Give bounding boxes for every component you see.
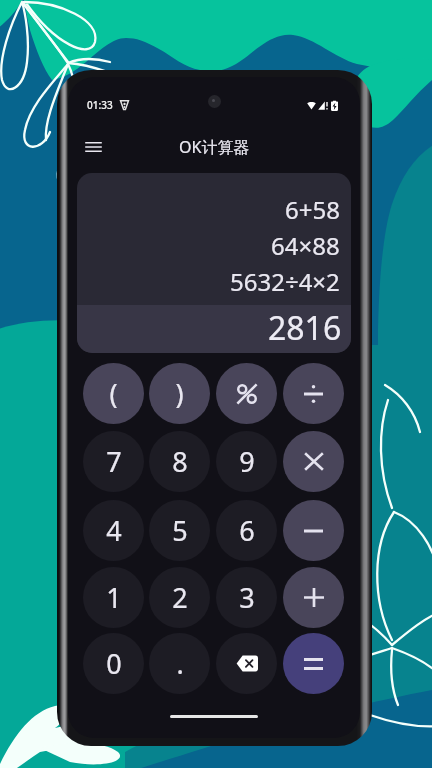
button[interactable]: ) <box>149 363 210 424</box>
staticText: 5 <box>172 512 188 549</box>
button[interactable] <box>283 363 344 424</box>
staticText: 3 <box>239 579 255 616</box>
staticText: ) <box>175 375 184 412</box>
button[interactable]: 2 <box>149 567 210 628</box>
staticText: 2 <box>172 579 188 616</box>
button[interactable]: 1 <box>83 567 144 628</box>
staticText: 64×88 <box>271 229 340 262</box>
button[interactable]: 8 <box>149 431 210 492</box>
button[interactable]: 3 <box>216 567 277 628</box>
staticText: ( <box>109 375 118 412</box>
button[interactable]: ( <box>83 363 144 424</box>
button[interactable]: 4 <box>83 500 144 561</box>
button[interactable]: 5 <box>149 500 210 561</box>
staticText: 2816 <box>268 306 342 350</box>
button[interactable]: Open navigation menu <box>74 128 112 166</box>
button[interactable]: Backspace <box>216 633 277 694</box>
button[interactable]: 7 <box>83 431 144 492</box>
staticText: 1 <box>106 579 122 616</box>
staticText: 5632÷4×2 <box>230 265 340 298</box>
staticText: 6 <box>239 512 255 549</box>
staticText: OK计算器 <box>179 136 250 158</box>
staticText: 9 <box>239 443 255 480</box>
button[interactable]: . <box>149 633 210 694</box>
staticText: 7 <box>106 443 122 480</box>
staticText: 6+58 <box>285 193 340 226</box>
button[interactable] <box>283 500 344 561</box>
button[interactable]: 6 <box>216 500 277 561</box>
staticText: 0 <box>106 645 122 682</box>
button[interactable]: 0 <box>83 633 144 694</box>
button[interactable]: 9 <box>216 431 277 492</box>
staticText: 4 <box>106 512 122 549</box>
staticText: 8 <box>172 443 188 480</box>
staticText: 01:33 <box>87 98 113 112</box>
button[interactable] <box>283 633 344 694</box>
button[interactable] <box>283 431 344 492</box>
button[interactable] <box>283 567 344 628</box>
staticText: . <box>176 645 184 682</box>
button[interactable] <box>216 363 277 424</box>
